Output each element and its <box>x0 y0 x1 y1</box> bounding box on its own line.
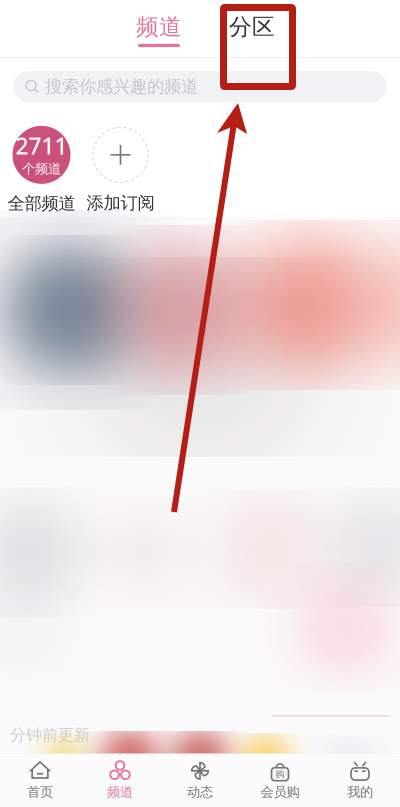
staticText: 会员购 <box>260 784 299 800</box>
button[interactable]: 搜索你感兴趣的频道 <box>13 71 387 102</box>
staticText: 购 <box>275 768 284 780</box>
staticText: 动态 <box>187 784 213 800</box>
staticText: 频道 <box>107 784 133 800</box>
button[interactable]: 首页 <box>0 755 80 805</box>
staticText: 2711 <box>15 131 67 161</box>
button[interactable]: 购 <box>240 755 320 805</box>
button[interactable]: 分区 <box>205 4 298 52</box>
button[interactable]: 添加订阅 <box>81 129 160 211</box>
staticText: 分区 <box>229 13 275 41</box>
staticText: 分钟前更新 <box>10 725 90 745</box>
staticText: 频道 <box>136 13 182 41</box>
staticText: 全部频道 <box>7 193 75 214</box>
staticText: 添加订阅 <box>86 192 154 214</box>
button[interactable]: 动态 <box>160 755 240 805</box>
staticText: 我的 <box>347 784 373 800</box>
staticText: 首页 <box>27 784 53 800</box>
button[interactable]: 我的 <box>320 755 400 805</box>
button[interactable]: 频道 <box>80 755 160 805</box>
staticText: 个频道 <box>22 161 61 177</box>
button[interactable]: 2711 <box>2 129 81 211</box>
button[interactable]: 频道 <box>112 4 205 52</box>
staticText: 搜索你感兴趣的频道 <box>45 76 198 97</box>
